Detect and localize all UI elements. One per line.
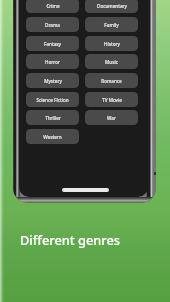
- button[interactable]: Horror: [26, 54, 79, 69]
- staticText: War: [107, 115, 116, 121]
- staticText: Science Fiction: [36, 97, 69, 103]
- button[interactable]: Mystery: [26, 73, 79, 88]
- button[interactable]: Family: [85, 17, 138, 32]
- staticText: TV Movie: [102, 97, 122, 103]
- button[interactable]: Fantasy: [26, 36, 79, 51]
- staticText: Music: [105, 59, 118, 65]
- staticText: Documentary: [97, 3, 127, 9]
- staticText: Different genres: [20, 231, 121, 248]
- staticText: Fantasy: [44, 41, 61, 47]
- staticText: Mystery: [44, 78, 62, 84]
- button[interactable]: Science Fiction: [26, 92, 79, 107]
- button[interactable]: Western: [26, 129, 79, 144]
- staticText: Horror: [45, 59, 60, 65]
- button[interactable]: Drama: [26, 17, 79, 32]
- button[interactable]: War: [85, 110, 138, 125]
- button[interactable]: Documentary: [85, 0, 138, 13]
- staticText: Family: [104, 22, 119, 28]
- button[interactable]: Thriller: [26, 110, 79, 125]
- staticText: Drama: [45, 22, 60, 28]
- staticText: Thriller: [45, 115, 61, 121]
- button[interactable]: Crime: [26, 0, 79, 13]
- staticText: History: [104, 41, 120, 47]
- button[interactable]: TV Movie: [85, 92, 138, 107]
- staticText: Western: [43, 134, 62, 140]
- button[interactable]: Music: [85, 54, 138, 69]
- button[interactable]: Romance: [85, 73, 138, 88]
- staticText: Crime: [46, 3, 60, 9]
- button[interactable]: History: [85, 36, 138, 51]
- staticText: Romance: [101, 78, 122, 84]
